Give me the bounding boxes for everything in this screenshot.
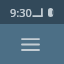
staticText: 9:30 (10, 5, 32, 20)
button[interactable]: Menu (12, 26, 48, 62)
